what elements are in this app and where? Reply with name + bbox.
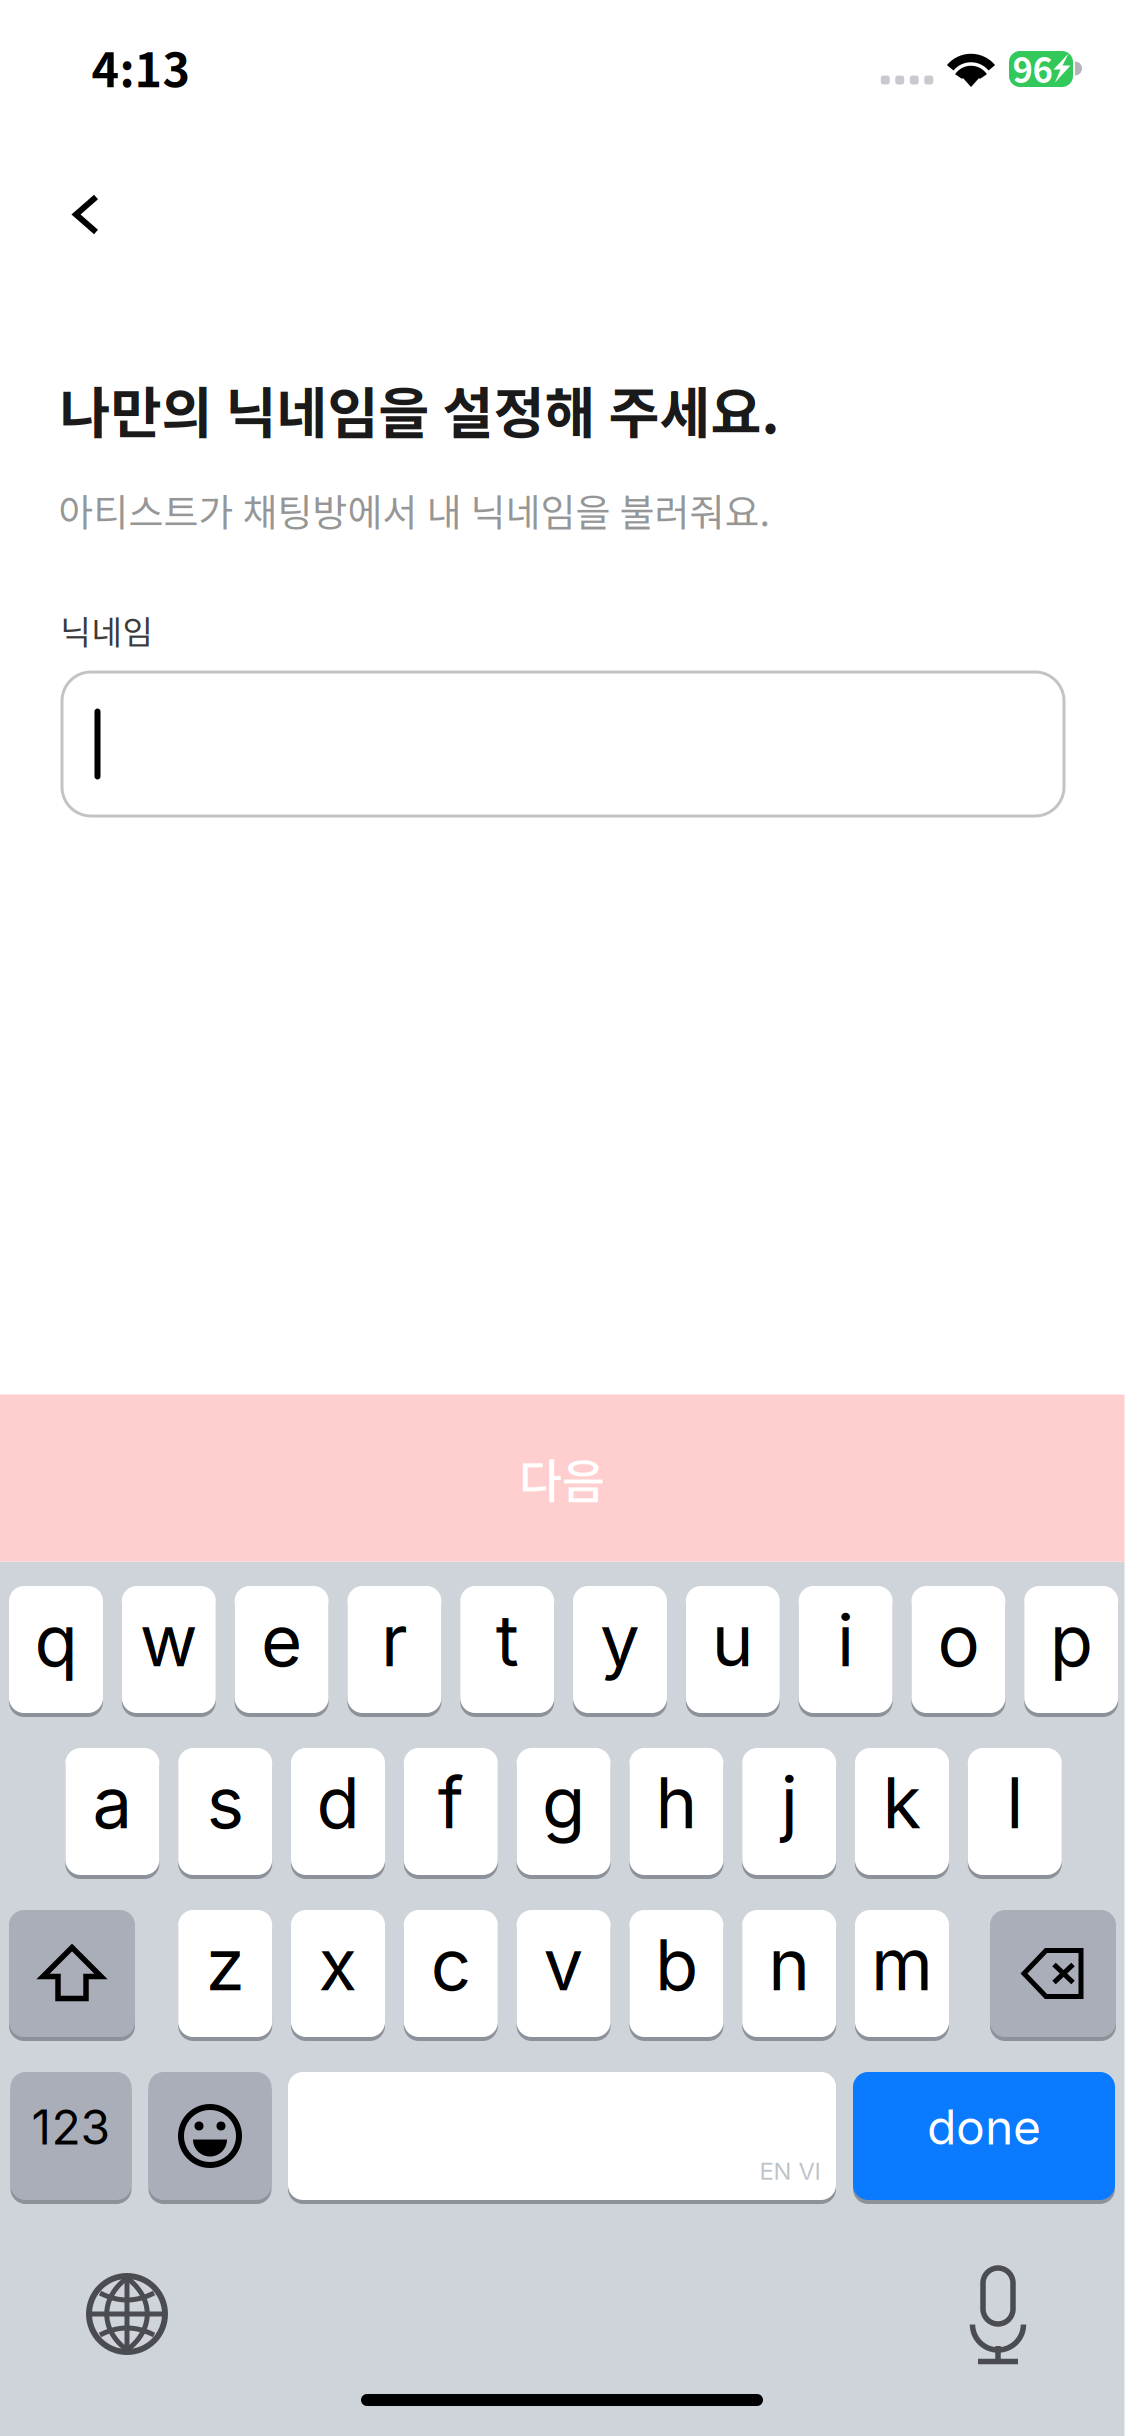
staticText: c — [431, 1922, 471, 2007]
staticText: h — [655, 1760, 697, 1845]
staticText: d — [316, 1760, 359, 1845]
staticText: s — [207, 1760, 244, 1845]
button[interactable]: Shift — [9, 1906, 135, 2041]
staticText: 4:13 — [91, 33, 190, 101]
button[interactable]: e — [235, 1582, 329, 1717]
button[interactable]: done — [853, 2068, 1115, 2204]
button[interactable]: g — [517, 1744, 611, 1879]
staticText: 123 — [31, 2098, 110, 2156]
button[interactable]: Nickname — [62, 672, 1064, 816]
button[interactable]: u — [686, 1582, 780, 1717]
button[interactable]: Back — [44, 170, 124, 260]
staticText: k — [882, 1760, 921, 1845]
button[interactable]: Dictation — [969, 2263, 1027, 2363]
staticText: EN VI — [759, 2156, 820, 2185]
button[interactable]: v — [517, 1906, 611, 2041]
staticText: l — [1006, 1760, 1023, 1845]
staticText: y — [600, 1598, 640, 1683]
button[interactable]: i — [799, 1582, 893, 1717]
button[interactable]: z — [178, 1906, 272, 2041]
staticText: f — [438, 1760, 464, 1845]
staticText: m — [871, 1922, 933, 2007]
button[interactable]: 다음 — [0, 1394, 1124, 1561]
button[interactable]: w — [122, 1582, 216, 1717]
button[interactable]: j — [742, 1744, 836, 1879]
button[interactable]: k — [855, 1744, 949, 1879]
button[interactable]: n — [742, 1906, 836, 2041]
staticText: w — [140, 1598, 198, 1683]
staticText: e — [261, 1598, 302, 1683]
button[interactable]: h — [629, 1744, 723, 1879]
staticText: g — [542, 1760, 585, 1845]
staticText: 다음 — [519, 1444, 605, 1512]
button[interactable]: c — [404, 1906, 498, 2041]
button[interactable]: p — [1024, 1582, 1118, 1717]
staticText: u — [712, 1598, 754, 1683]
button[interactable]: 123 — [10, 2068, 131, 2204]
button[interactable]: d — [291, 1744, 385, 1879]
staticText: n — [768, 1922, 810, 2007]
staticText: 닉네임 — [60, 606, 153, 654]
staticText: 아티스트가 채팅방에서 내 닉네임을 불러줘요. — [58, 482, 770, 537]
button[interactable]: r — [347, 1582, 441, 1717]
button[interactable]: f — [404, 1744, 498, 1879]
staticText: 96 — [1012, 43, 1052, 93]
staticText: i — [837, 1598, 854, 1683]
button[interactable]: Emoji — [148, 2068, 271, 2204]
button[interactable]: Space — [288, 2068, 836, 2204]
staticText: v — [544, 1922, 584, 2007]
button[interactable]: Delete — [990, 1906, 1116, 2041]
button[interactable]: y — [573, 1582, 667, 1717]
staticText: a — [92, 1760, 132, 1845]
staticText: b — [655, 1922, 698, 2007]
button[interactable]: l — [968, 1744, 1062, 1879]
staticText: x — [318, 1922, 357, 2007]
staticText: done — [927, 2098, 1041, 2156]
staticText: j — [781, 1760, 798, 1845]
button[interactable]: Change keyboard — [89, 2276, 165, 2352]
button[interactable]: t — [460, 1582, 554, 1717]
staticText: o — [937, 1598, 979, 1683]
button[interactable]: b — [629, 1906, 723, 2041]
staticText: r — [381, 1598, 408, 1683]
button[interactable]: o — [911, 1582, 1005, 1717]
button[interactable]: x — [291, 1906, 385, 2041]
staticText: 나만의 닉네임을 설정해 주세요. — [59, 369, 779, 449]
button[interactable]: s — [178, 1744, 272, 1879]
button[interactable]: m — [855, 1906, 949, 2041]
staticText: t — [496, 1598, 519, 1683]
button[interactable]: q — [9, 1582, 103, 1717]
staticText: q — [34, 1598, 77, 1683]
staticText: z — [206, 1922, 245, 2007]
button[interactable]: a — [65, 1744, 159, 1879]
staticText: p — [1050, 1598, 1093, 1683]
